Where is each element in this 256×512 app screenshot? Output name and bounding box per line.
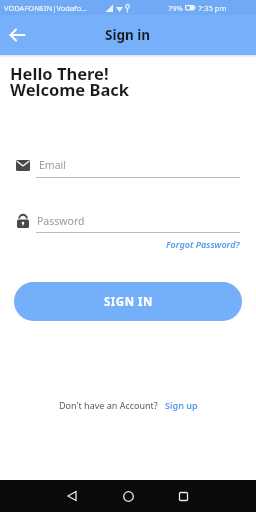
staticText: Password bbox=[37, 214, 85, 228]
button[interactable]: Forgot Password? bbox=[166, 238, 240, 250]
staticText: Hello There! Welcome Back bbox=[10, 62, 130, 100]
button[interactable] bbox=[62, 486, 82, 506]
staticText: Email bbox=[39, 158, 66, 172]
button[interactable] bbox=[10, 28, 25, 42]
staticText: SIGN IN bbox=[104, 294, 153, 310]
button[interactable] bbox=[118, 486, 138, 506]
staticText: VODAFONEIN|Vodafo... bbox=[4, 3, 88, 13]
staticText: 79% bbox=[168, 3, 183, 13]
button[interactable] bbox=[173, 486, 193, 506]
button[interactable]: SIGN IN bbox=[14, 282, 242, 321]
staticText: 7:35 pm bbox=[198, 3, 227, 13]
button[interactable]: Sign up bbox=[165, 399, 198, 411]
staticText: Don't have an Account? bbox=[59, 399, 158, 411]
staticText: Sign in bbox=[105, 26, 151, 44]
